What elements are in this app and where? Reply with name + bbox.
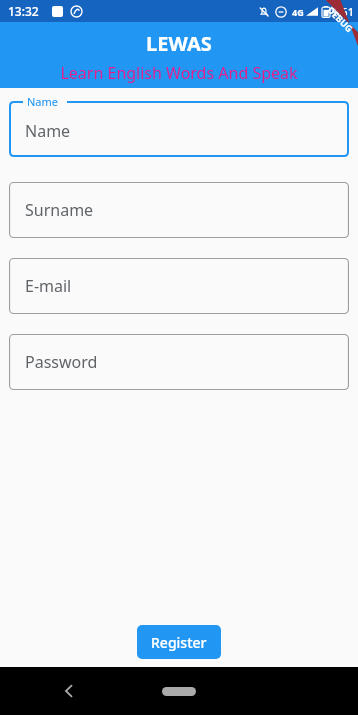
- staticText: %61: [332, 4, 354, 19]
- button[interactable]: Register: [137, 625, 221, 659]
- button[interactable]: Home: [156, 680, 202, 702]
- staticText: DEBUG: [325, 4, 356, 34]
- button[interactable]: Name: [9, 101, 349, 157]
- button[interactable]: Back: [52, 674, 86, 708]
- staticText: Name: [27, 94, 59, 109]
- staticText: Name: [25, 120, 71, 142]
- button[interactable]: Password: [9, 334, 349, 390]
- button[interactable]: E-mail: [9, 258, 349, 314]
- staticText: Register: [151, 633, 207, 652]
- staticText: Learn English Words And Speak: [0, 62, 358, 84]
- button[interactable]: Surname: [9, 182, 349, 238]
- staticText: Password: [25, 351, 98, 373]
- staticText: 13:32: [8, 3, 39, 19]
- staticText: Surname: [25, 199, 94, 221]
- staticText: E-mail: [25, 275, 72, 297]
- staticText: LEWAS: [146, 30, 212, 57]
- staticText: 4G: [292, 6, 304, 18]
